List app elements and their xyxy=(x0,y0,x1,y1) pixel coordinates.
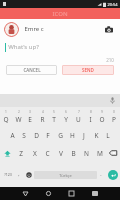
button[interactable]: F xyxy=(42,126,54,144)
staticText: E xyxy=(28,115,32,124)
staticText: Q xyxy=(3,115,9,124)
staticText: 5 xyxy=(53,110,55,114)
staticText: What's up? xyxy=(8,43,39,51)
button[interactable]: SEND xyxy=(62,65,114,75)
staticText: 9 xyxy=(101,110,103,114)
staticText: . xyxy=(100,171,102,178)
button[interactable]: D xyxy=(30,126,42,144)
staticText: ?123 xyxy=(4,172,12,177)
button[interactable]: Hide keyboard xyxy=(83,187,106,200)
button[interactable]: X xyxy=(28,144,41,162)
staticText: Türkçe xyxy=(59,173,72,178)
button[interactable]: Backspace xyxy=(106,144,120,162)
staticText: K xyxy=(94,131,99,140)
staticText: 2 xyxy=(18,110,20,114)
staticText: 1 xyxy=(5,110,7,114)
staticText: H xyxy=(70,131,75,140)
staticText: O xyxy=(99,115,105,124)
button[interactable]: CANCEL xyxy=(6,65,57,75)
button[interactable]: B xyxy=(67,144,80,162)
staticText: N xyxy=(84,149,89,158)
button[interactable]: 9 xyxy=(96,107,108,126)
staticText: M xyxy=(97,149,103,158)
staticText: Z xyxy=(19,149,23,158)
button[interactable]: V xyxy=(54,144,67,162)
button[interactable]: M xyxy=(93,144,106,162)
button[interactable]: Take photo xyxy=(102,22,116,36)
button[interactable]: H xyxy=(66,126,78,144)
button[interactable]: 2 xyxy=(12,107,24,126)
button[interactable]: Z xyxy=(14,144,28,162)
staticText: CANCEL xyxy=(23,67,41,73)
staticText: , xyxy=(18,171,20,178)
staticText: 6 xyxy=(65,110,67,114)
button[interactable]: L xyxy=(102,126,114,144)
staticText: 0 xyxy=(113,110,115,114)
staticText: 4 xyxy=(42,110,44,114)
staticText: ICON xyxy=(52,10,68,18)
button[interactable]: 3 xyxy=(24,107,36,126)
staticText: U xyxy=(76,115,81,124)
staticText: 20:54 xyxy=(107,2,118,7)
staticText: 7 xyxy=(78,110,80,114)
staticText: A xyxy=(10,131,15,140)
button[interactable]: 4 xyxy=(36,107,48,126)
staticText: L xyxy=(106,131,110,140)
staticText: V xyxy=(59,149,63,158)
staticText: 210 xyxy=(106,57,114,63)
staticText: P xyxy=(112,115,116,124)
button[interactable]: Home xyxy=(37,187,60,200)
staticText: T xyxy=(52,115,56,124)
button[interactable]: 6 xyxy=(60,107,72,126)
button[interactable]: Türkçe xyxy=(34,171,97,179)
staticText: Y xyxy=(64,115,68,124)
staticText: B xyxy=(71,149,76,158)
button[interactable]: Shift xyxy=(0,144,14,162)
staticText: X xyxy=(33,149,37,158)
button[interactable]: , xyxy=(15,163,23,186)
staticText: W xyxy=(15,115,22,124)
staticText: Emre c xyxy=(24,25,44,33)
button[interactable]: J xyxy=(78,126,90,144)
button[interactable]: S xyxy=(18,126,30,144)
staticText: C xyxy=(45,149,50,158)
button[interactable]: Voice input xyxy=(109,97,116,104)
button[interactable]: Recent apps xyxy=(60,187,83,200)
staticText: 8 xyxy=(90,110,92,114)
button[interactable]: A xyxy=(6,126,18,144)
button[interactable]: 5 xyxy=(48,107,60,126)
staticText: I xyxy=(89,115,92,124)
button[interactable]: Enter xyxy=(105,163,120,186)
button[interactable]: Back xyxy=(14,187,37,200)
staticText: F xyxy=(46,131,50,140)
button[interactable]: Profile photo xyxy=(4,22,19,37)
staticText: 3 xyxy=(29,110,31,114)
staticText: SEND xyxy=(82,67,94,73)
staticText: J xyxy=(83,131,85,140)
button[interactable]: N xyxy=(80,144,93,162)
staticText: R xyxy=(40,115,45,124)
staticText: G xyxy=(58,131,63,140)
staticText: D xyxy=(34,131,39,140)
button[interactable]: Emoji xyxy=(23,163,34,186)
button[interactable]: ?123 xyxy=(0,163,15,186)
button[interactable]: 8 xyxy=(84,107,96,126)
button[interactable]: C xyxy=(41,144,54,162)
staticText: S xyxy=(22,131,26,140)
button[interactable]: 1 xyxy=(0,107,12,126)
button[interactable]: G xyxy=(54,126,66,144)
button[interactable]: K xyxy=(90,126,102,144)
button[interactable]: 0 xyxy=(108,107,120,126)
button[interactable]: What's up? xyxy=(0,39,120,55)
button[interactable]: 7 xyxy=(72,107,84,126)
